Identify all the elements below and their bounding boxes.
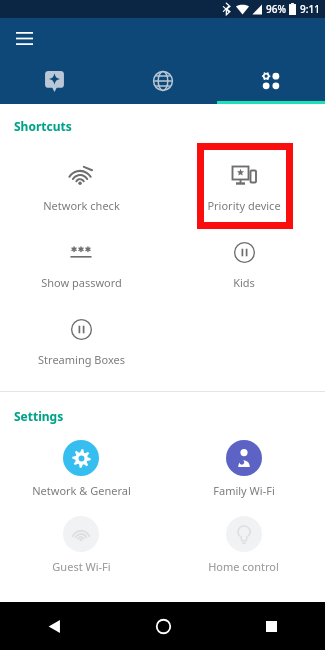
staticText: Family Wi-Fi xyxy=(213,483,275,498)
button[interactable]: Recent apps xyxy=(217,602,325,650)
button[interactable]: Back xyxy=(0,602,109,650)
staticText: Kids xyxy=(233,275,255,290)
staticText: Guest Wi-Fi xyxy=(52,559,111,574)
button[interactable]: Guest Wi-Fi xyxy=(0,516,162,574)
button[interactable]: Highlights tab xyxy=(0,58,109,104)
button[interactable]: Streaming Boxes xyxy=(0,310,162,369)
staticText: Shortcuts xyxy=(14,118,72,134)
button[interactable]: Home xyxy=(109,602,217,650)
staticText: 9:11 xyxy=(300,2,320,16)
button[interactable]: Kids xyxy=(162,233,325,292)
button[interactable]: Network check xyxy=(0,156,162,215)
staticText: Show password xyxy=(41,275,122,290)
button[interactable]: Show password xyxy=(0,233,162,292)
staticText: Network & General xyxy=(32,483,131,498)
staticText: Home control xyxy=(208,559,279,574)
button[interactable]: Open navigation menu xyxy=(8,22,40,54)
button[interactable]: Settings tab xyxy=(217,58,325,104)
staticText: Settings xyxy=(14,408,64,424)
button[interactable]: Network tab xyxy=(109,58,217,104)
button[interactable]: Network & General xyxy=(0,440,162,498)
staticText: Priority device xyxy=(207,198,281,213)
staticText: Streaming Boxes xyxy=(38,352,125,367)
button[interactable]: Family Wi-Fi xyxy=(162,440,325,498)
button[interactable]: Priority device xyxy=(162,156,325,215)
button[interactable]: Home control xyxy=(162,516,325,574)
staticText: 96% xyxy=(266,2,286,16)
staticText: Network check xyxy=(43,198,120,213)
